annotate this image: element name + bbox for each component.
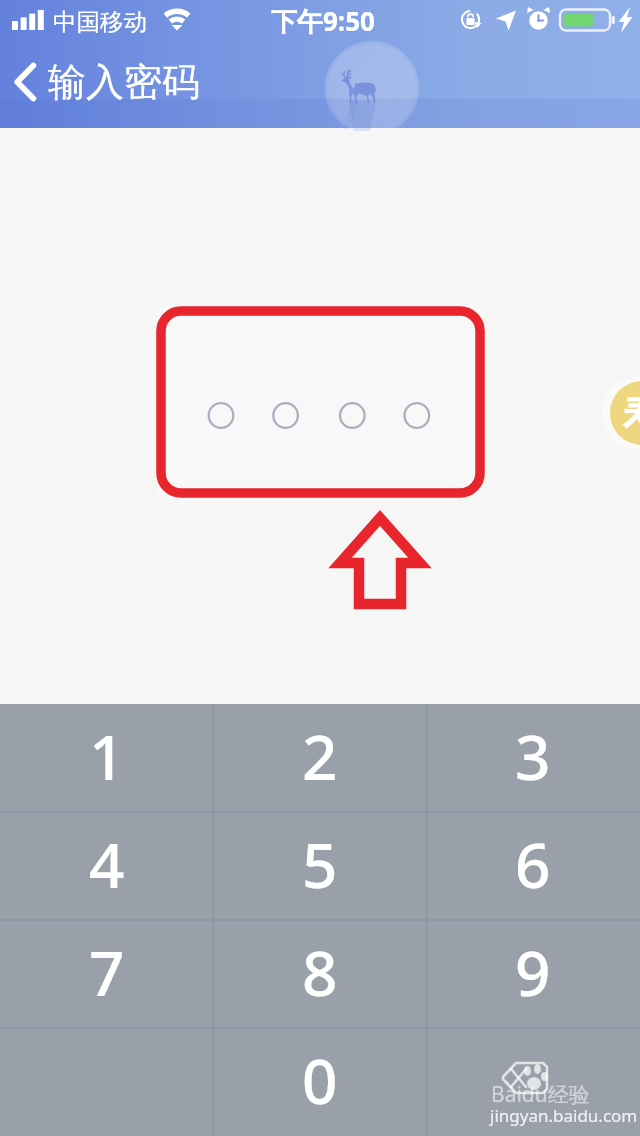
button[interactable]: Key 1: [0, 704, 213, 812]
staticText: 4: [89, 822, 125, 906]
button[interactable]: Key 0: [213, 1028, 426, 1136]
button[interactable]: Shortcut: [602, 377, 640, 449]
staticText: 6: [515, 822, 551, 906]
button[interactable]: Blank key: [426, 1028, 639, 1136]
staticText: 2: [302, 714, 338, 798]
button[interactable]: Key 3: [426, 704, 639, 812]
button[interactable]: Key 7: [0, 920, 213, 1028]
button[interactable]: Key 6: [426, 812, 639, 920]
staticText: 中国移动: [53, 7, 147, 37]
staticText: 寿: [623, 388, 640, 438]
button[interactable]: Key 5: [213, 812, 426, 920]
button[interactable]: Key 8: [213, 920, 426, 1028]
staticText: 1: [89, 714, 125, 798]
button[interactable]: Password field: [157, 307, 484, 497]
button[interactable]: Key 4: [0, 812, 213, 920]
staticText: jingyan.baidu.com: [490, 1104, 638, 1127]
staticText: 下午9:50: [271, 3, 375, 39]
staticText: Baidu经验: [491, 1080, 590, 1109]
staticText: 3: [515, 714, 551, 798]
staticText: 5: [302, 822, 338, 906]
staticText: 7: [89, 930, 125, 1014]
button[interactable]: Key 2: [213, 704, 426, 812]
button[interactable]: Key 9: [426, 920, 639, 1028]
staticText: 8: [302, 930, 338, 1014]
staticText: 9: [515, 930, 551, 1014]
button[interactable]: Back: [0, 54, 48, 110]
staticText: 输入密码: [48, 58, 200, 106]
staticText: 0: [302, 1038, 338, 1122]
